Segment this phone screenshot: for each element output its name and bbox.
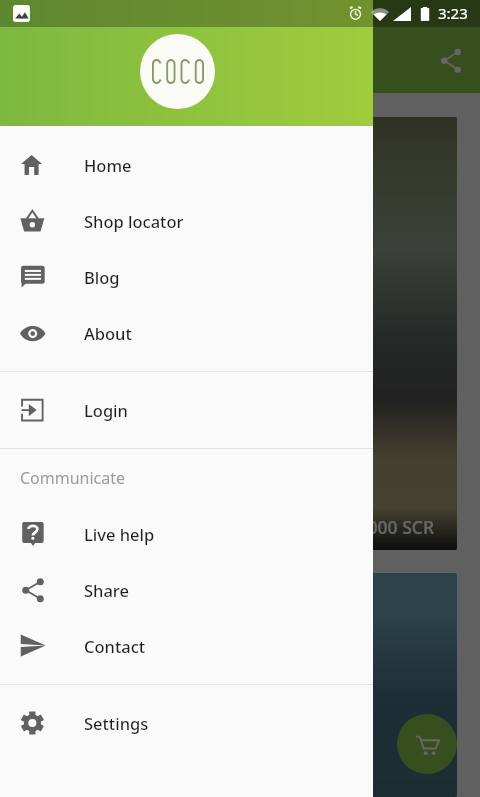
button[interactable]: Share bbox=[0, 562, 373, 618]
button[interactable]: Shopping cart bbox=[397, 714, 457, 774]
staticText: Live help bbox=[84, 523, 155, 545]
button[interactable]: Share bbox=[427, 36, 475, 84]
button[interactable]: Settings bbox=[0, 695, 373, 751]
staticText: 2 000 SCR bbox=[353, 515, 434, 539]
button[interactable]: Shop locator bbox=[0, 193, 373, 249]
staticText: Home bbox=[84, 154, 132, 176]
staticText: Contact bbox=[84, 635, 146, 657]
button[interactable]: Home bbox=[0, 137, 373, 193]
button[interactable]: About bbox=[0, 305, 373, 361]
staticText: 3:23 bbox=[438, 3, 468, 23]
button[interactable] bbox=[23, 573, 457, 797]
staticText: Login bbox=[84, 399, 128, 421]
staticText: Blog bbox=[84, 266, 120, 288]
staticText: About bbox=[84, 322, 132, 344]
button[interactable]: Login bbox=[0, 382, 373, 438]
button[interactable]: Live help bbox=[0, 506, 373, 562]
button[interactable]: Contact bbox=[0, 618, 373, 674]
staticText: Communicate bbox=[20, 467, 126, 489]
staticText: Shop locator bbox=[84, 210, 184, 232]
button[interactable]: 2 000 SCR bbox=[23, 117, 457, 550]
button[interactable]: Blog bbox=[0, 249, 373, 305]
staticText: Share bbox=[84, 579, 129, 601]
staticText: Settings bbox=[84, 712, 149, 734]
